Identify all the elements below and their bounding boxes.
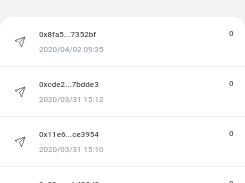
staticText: 0 [229,79,234,88]
button[interactable]: Sent transaction [0,67,245,116]
staticText: 2020/04/02 09:35 [39,45,104,54]
staticText: 0 [229,29,234,38]
staticText: 2020/03/31 15:12 [39,95,104,104]
staticText: 0x11e6...ce3954 [39,130,99,139]
staticText: 0 [229,179,234,183]
staticText: 0xcde2...7bdde3 [39,80,99,89]
button[interactable]: Sent transaction [0,117,245,166]
staticText: 0x8fa5...7352bf [39,30,97,39]
other: Sent transaction [14,137,24,147]
other: Sent transaction [14,87,24,97]
staticText: 2020/03/31 15:10 [39,145,104,154]
button[interactable]: Sent transaction [0,167,245,183]
staticText: 0x22aa...b429d8 [39,180,100,183]
staticText: 0 [229,129,234,138]
button[interactable]: Sent transaction [0,17,245,66]
other: Sent transaction [14,37,24,47]
